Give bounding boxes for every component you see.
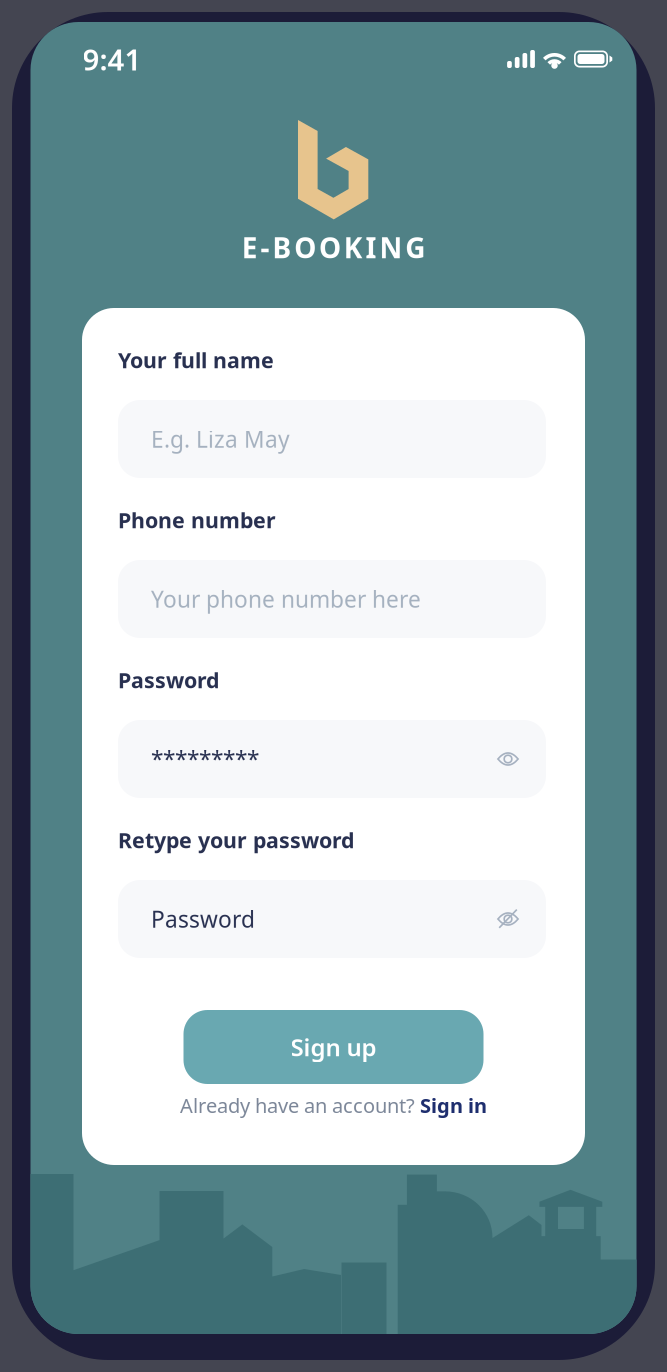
button[interactable]: Already have an account?: [118, 1092, 549, 1119]
staticText: Already have an account?: [180, 1092, 415, 1119]
staticText: Sign in: [420, 1092, 487, 1119]
staticText: Password: [151, 904, 255, 934]
staticText: E.g. Liza May: [151, 424, 290, 454]
button[interactable]: *********: [118, 720, 546, 798]
staticText: Retype your password: [118, 826, 354, 854]
button[interactable]: E.g. Liza May: [118, 400, 546, 478]
button[interactable]: Sign up: [183, 1010, 483, 1084]
staticText: Your phone number here: [151, 584, 421, 614]
staticText: Your full name: [118, 346, 274, 374]
staticText: E-BOOKING: [242, 229, 425, 266]
staticText: *********: [151, 744, 259, 774]
staticText: Sign up: [290, 1031, 376, 1063]
staticText: Password: [118, 666, 219, 694]
button[interactable]: Your phone number here: [118, 560, 546, 638]
staticText: 9:41: [82, 39, 141, 78]
button[interactable]: Password: [118, 880, 546, 958]
staticText: Phone number: [118, 506, 276, 534]
